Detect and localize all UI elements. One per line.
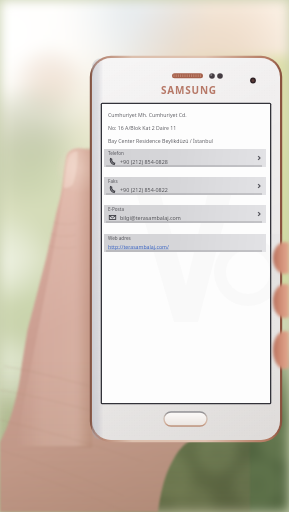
button[interactable]: Faks [104, 177, 266, 195]
button[interactable]: Home [164, 412, 207, 426]
staticText: http://terasambalaj.com/ [108, 243, 169, 250]
staticText: Cumhuriyet Mh. Cumhuriyet Cd. [108, 111, 187, 118]
button[interactable]: Web adres [104, 234, 266, 252]
staticText: Faks [108, 178, 118, 184]
staticText: No: 16 A/Blok Kat 2 Daire 11 [108, 124, 177, 131]
staticText: Web adres [108, 235, 131, 241]
staticText: +90 (212) 854-0828 [120, 158, 168, 165]
staticText: E-Posta [108, 206, 125, 212]
staticText: Telefon [108, 150, 124, 156]
staticText: +90 (212) 854-0822 [120, 186, 168, 193]
staticText: Bay Center Residence Beylikdüzü / İstanb… [108, 137, 213, 144]
button[interactable]: E-Posta [104, 205, 266, 223]
button[interactable]: Telefon [104, 149, 266, 167]
staticText: SAMSUNG [161, 83, 217, 97]
staticText: bilgi@terasambalaj.com [120, 214, 181, 221]
